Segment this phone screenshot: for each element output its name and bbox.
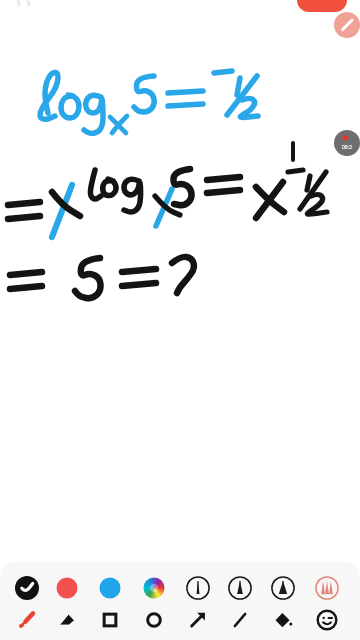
button[interactable]: Brush size 4 bbox=[312, 573, 342, 603]
button[interactable]: Recording timer bbox=[334, 130, 360, 156]
button[interactable]: Brush bbox=[12, 605, 42, 635]
button[interactable]: Pen tool bbox=[334, 12, 360, 38]
button[interactable]: Colour picker bbox=[139, 573, 169, 603]
staticText: 00:2 bbox=[342, 144, 352, 151]
button[interactable]: Sticker bbox=[312, 605, 342, 635]
button[interactable]: Blue colour bbox=[95, 573, 125, 603]
button[interactable]: Fill bbox=[268, 605, 298, 635]
button[interactable]: Brush size 3 bbox=[268, 573, 298, 603]
button[interactable]: Ellipse bbox=[139, 605, 169, 635]
button[interactable]: Line bbox=[225, 605, 255, 635]
button[interactable]: Red colour bbox=[52, 573, 82, 603]
button[interactable]: Save bbox=[297, 0, 347, 12]
button[interactable]: Arrow bbox=[183, 605, 213, 635]
button[interactable]: Brush size 2 bbox=[225, 573, 255, 603]
button[interactable]: Confirm colour bbox=[12, 573, 42, 603]
button[interactable]: Rectangle bbox=[95, 605, 125, 635]
button[interactable]: Brush size 1 bbox=[183, 573, 213, 603]
button[interactable]: Eraser bbox=[52, 605, 82, 635]
